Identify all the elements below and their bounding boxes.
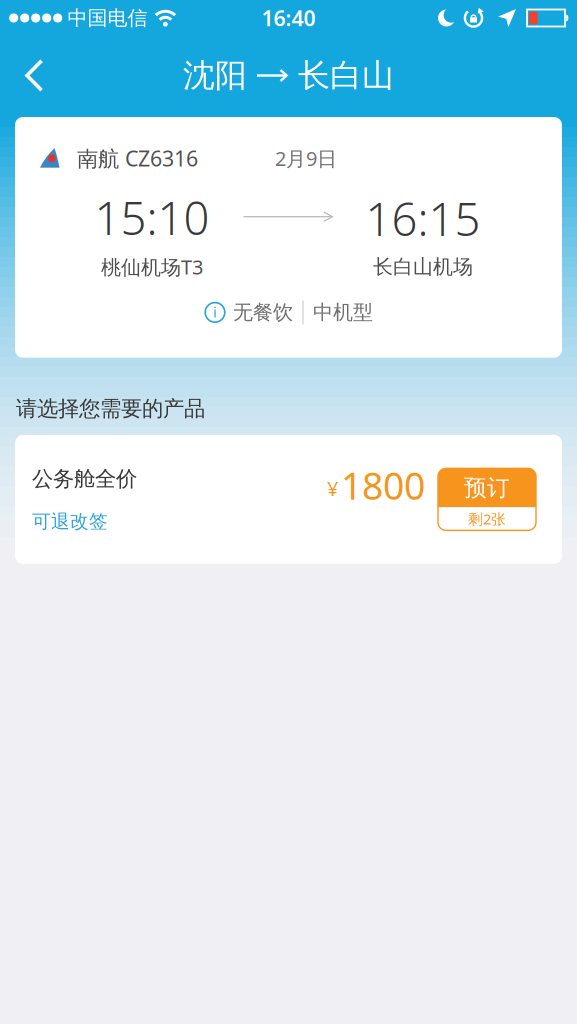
staticText: 16:40 [261,4,315,32]
staticText: 南航 CZ6316 [77,144,198,172]
staticText: 中国电信 [67,6,147,30]
staticText: 预订 [464,474,510,502]
staticText: 公务舱全价 [32,466,137,492]
staticText: i [213,302,217,322]
staticText: 无餐饮 [233,300,293,325]
staticText: 桃仙机场T3 [101,253,203,280]
staticText: 15:10 [94,187,209,247]
staticText: 1800 [341,461,425,510]
button[interactable]: 航班详情 [204,300,373,325]
staticText: ¥ [327,475,338,502]
staticText: 请选择您需要的产品 [16,396,205,422]
button[interactable]: 公务舱全价 [15,435,562,564]
staticText: 可退改签 [32,510,108,533]
staticText: 剩2张 [468,509,506,529]
button[interactable]: 预订 [438,468,536,530]
staticText: 中机型 [313,300,373,325]
staticText: 2月9日 [275,145,337,171]
staticText: 长白山机场 [373,254,473,279]
staticText: 沈阳 [183,56,247,95]
staticText: 16:15 [365,188,480,248]
staticText: 长白山 [298,56,394,95]
button[interactable]: Back [0,59,61,92]
